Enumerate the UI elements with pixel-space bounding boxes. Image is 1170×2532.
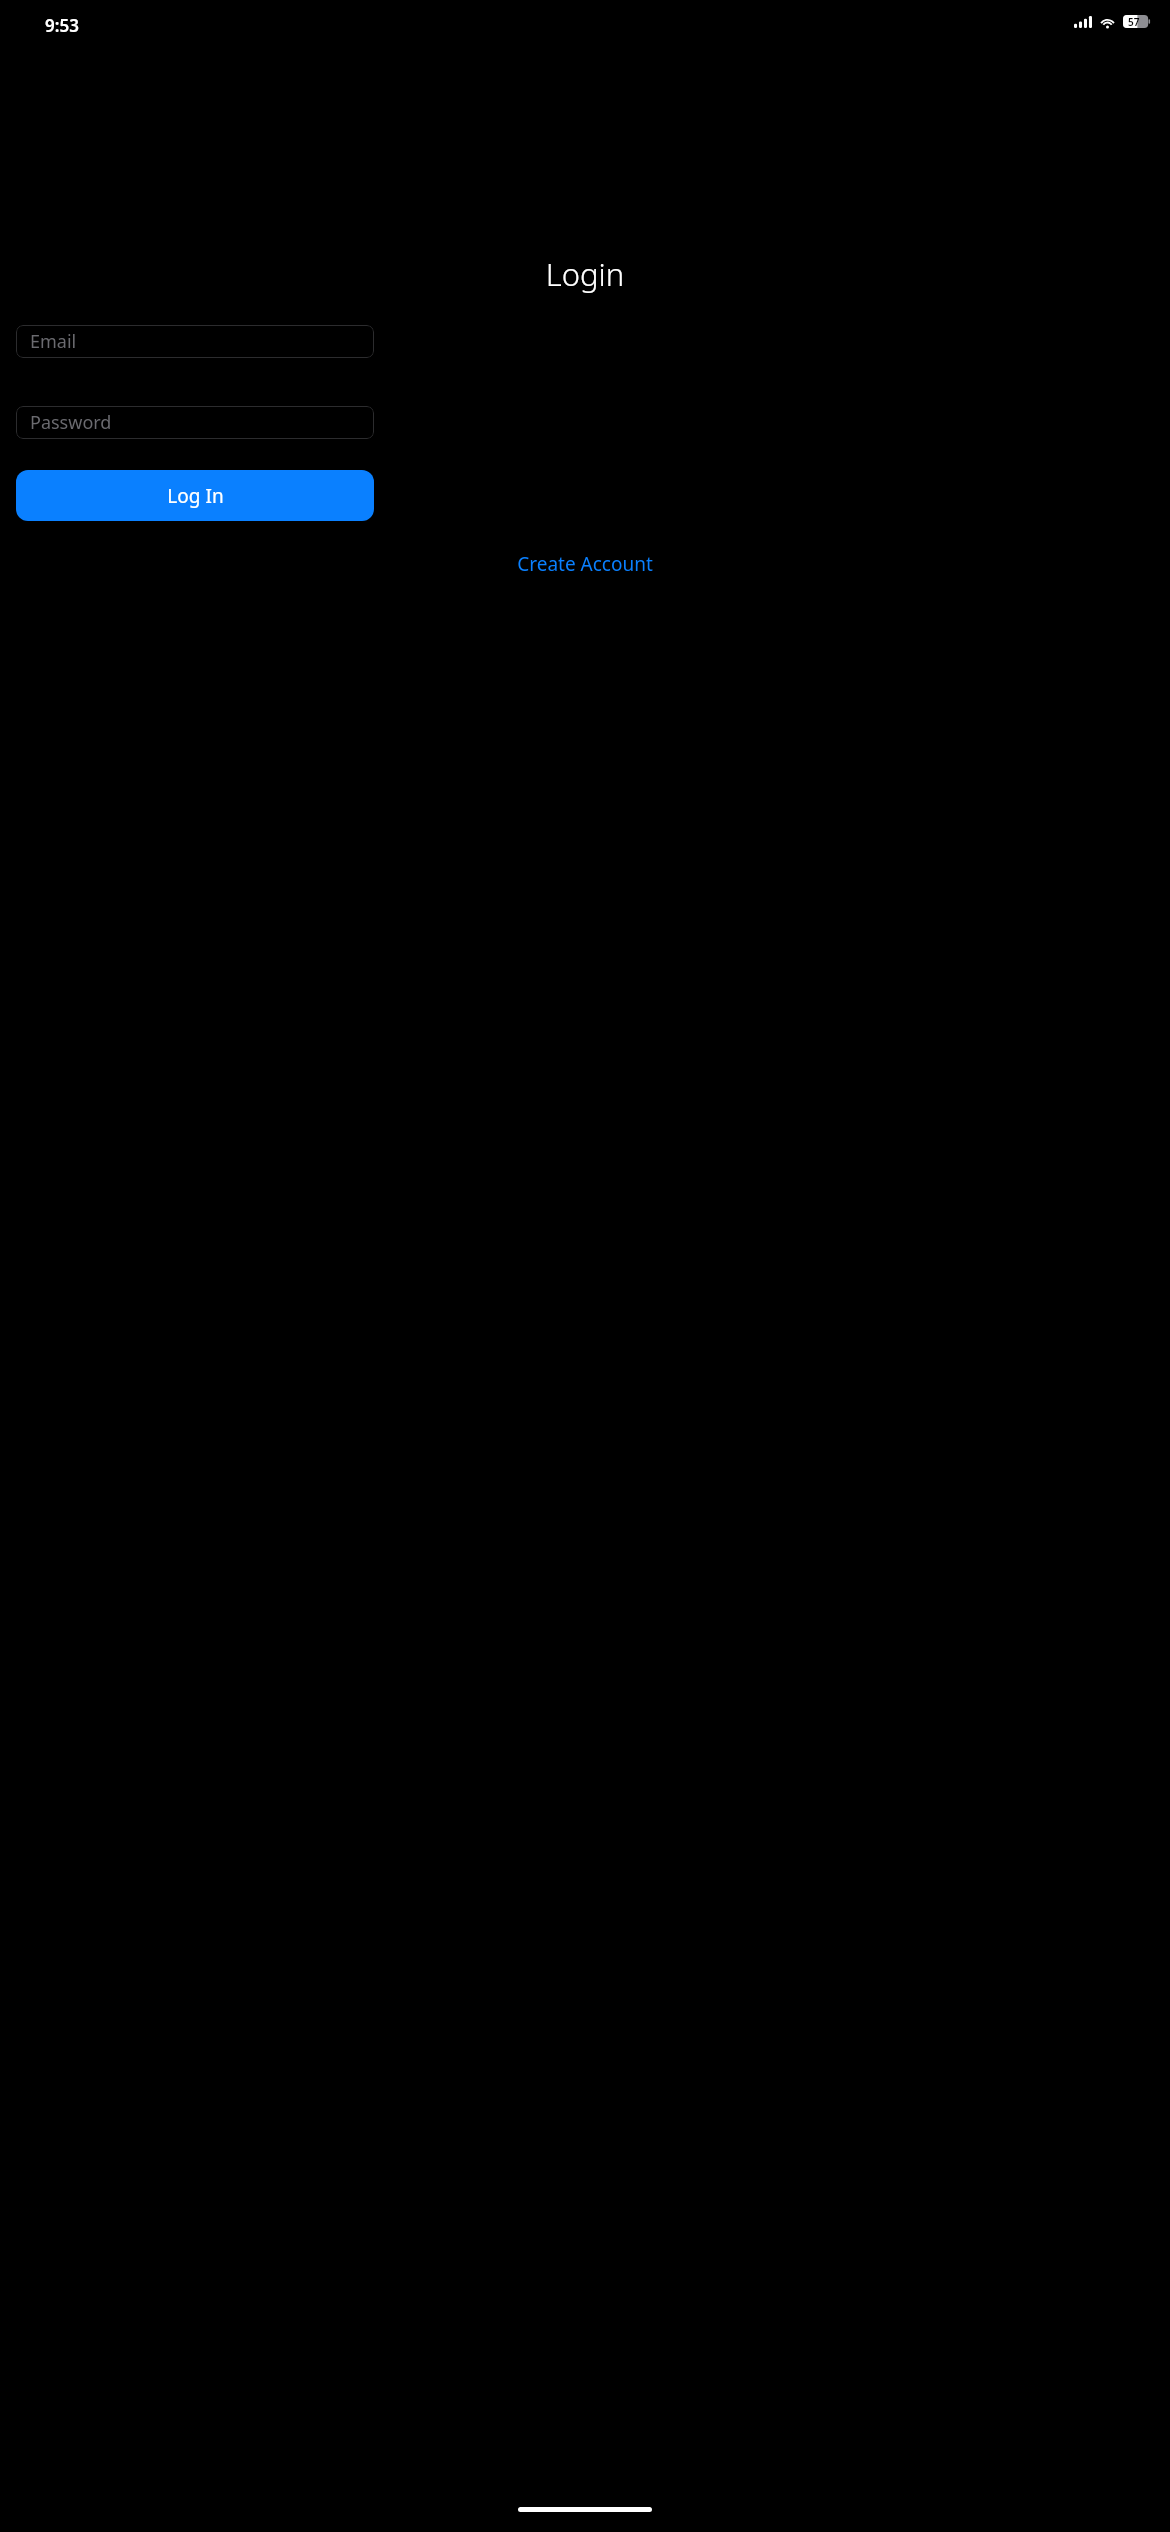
- button[interactable]: Create Account: [503, 546, 667, 582]
- button[interactable]: Password: [16, 406, 374, 439]
- staticText: Log In: [167, 483, 224, 509]
- staticText: Login: [0, 253, 1170, 295]
- button[interactable]: Email: [16, 325, 374, 358]
- staticText: 9:53: [45, 14, 79, 37]
- staticText: Email: [30, 329, 77, 354]
- staticText: Password: [30, 410, 112, 435]
- staticText: Create Account: [517, 551, 653, 577]
- staticText: 57: [1128, 15, 1140, 28]
- button[interactable]: Log In: [16, 470, 374, 521]
